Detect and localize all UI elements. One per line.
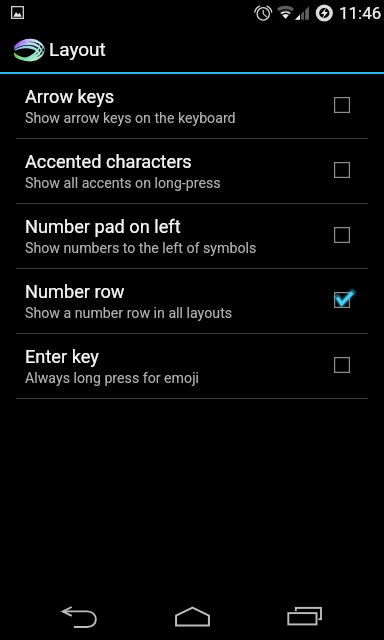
staticText: Show all accents on long-press bbox=[25, 175, 221, 192]
button[interactable]: Recent apps bbox=[249, 592, 362, 640]
staticText: Number row bbox=[25, 281, 125, 302]
staticText: Show arrow keys on the keyboard bbox=[25, 110, 236, 127]
button[interactable]: Checked bbox=[324, 282, 360, 318]
staticText: Number pad on left bbox=[25, 216, 181, 237]
button[interactable]: Number pad on left bbox=[0, 204, 384, 269]
staticText: Enter key bbox=[25, 346, 99, 367]
staticText: Arrow keys bbox=[25, 86, 115, 107]
button[interactable]: Unchecked bbox=[324, 87, 360, 123]
button[interactable]: Unchecked bbox=[324, 217, 360, 253]
button[interactable]: Number row bbox=[0, 269, 384, 334]
button[interactable]: Accented characters bbox=[0, 139, 384, 204]
staticText: Accented characters bbox=[25, 151, 192, 172]
button[interactable]: Arrow keys bbox=[0, 74, 384, 139]
staticText: Show numbers to the left of symbols bbox=[25, 240, 257, 257]
staticText: Show a number row in all layouts bbox=[25, 305, 233, 322]
button[interactable]: Unchecked bbox=[324, 152, 360, 188]
button[interactable]: Back bbox=[23, 592, 136, 640]
button[interactable]: Layout bbox=[0, 25, 384, 72]
staticText: Always long press for emoji bbox=[25, 370, 199, 387]
button[interactable]: Home bbox=[136, 592, 249, 640]
button[interactable]: Unchecked bbox=[324, 347, 360, 383]
button[interactable]: Enter key bbox=[0, 334, 384, 399]
staticText: 11:46 bbox=[339, 3, 382, 23]
staticText: Layout bbox=[49, 38, 106, 60]
